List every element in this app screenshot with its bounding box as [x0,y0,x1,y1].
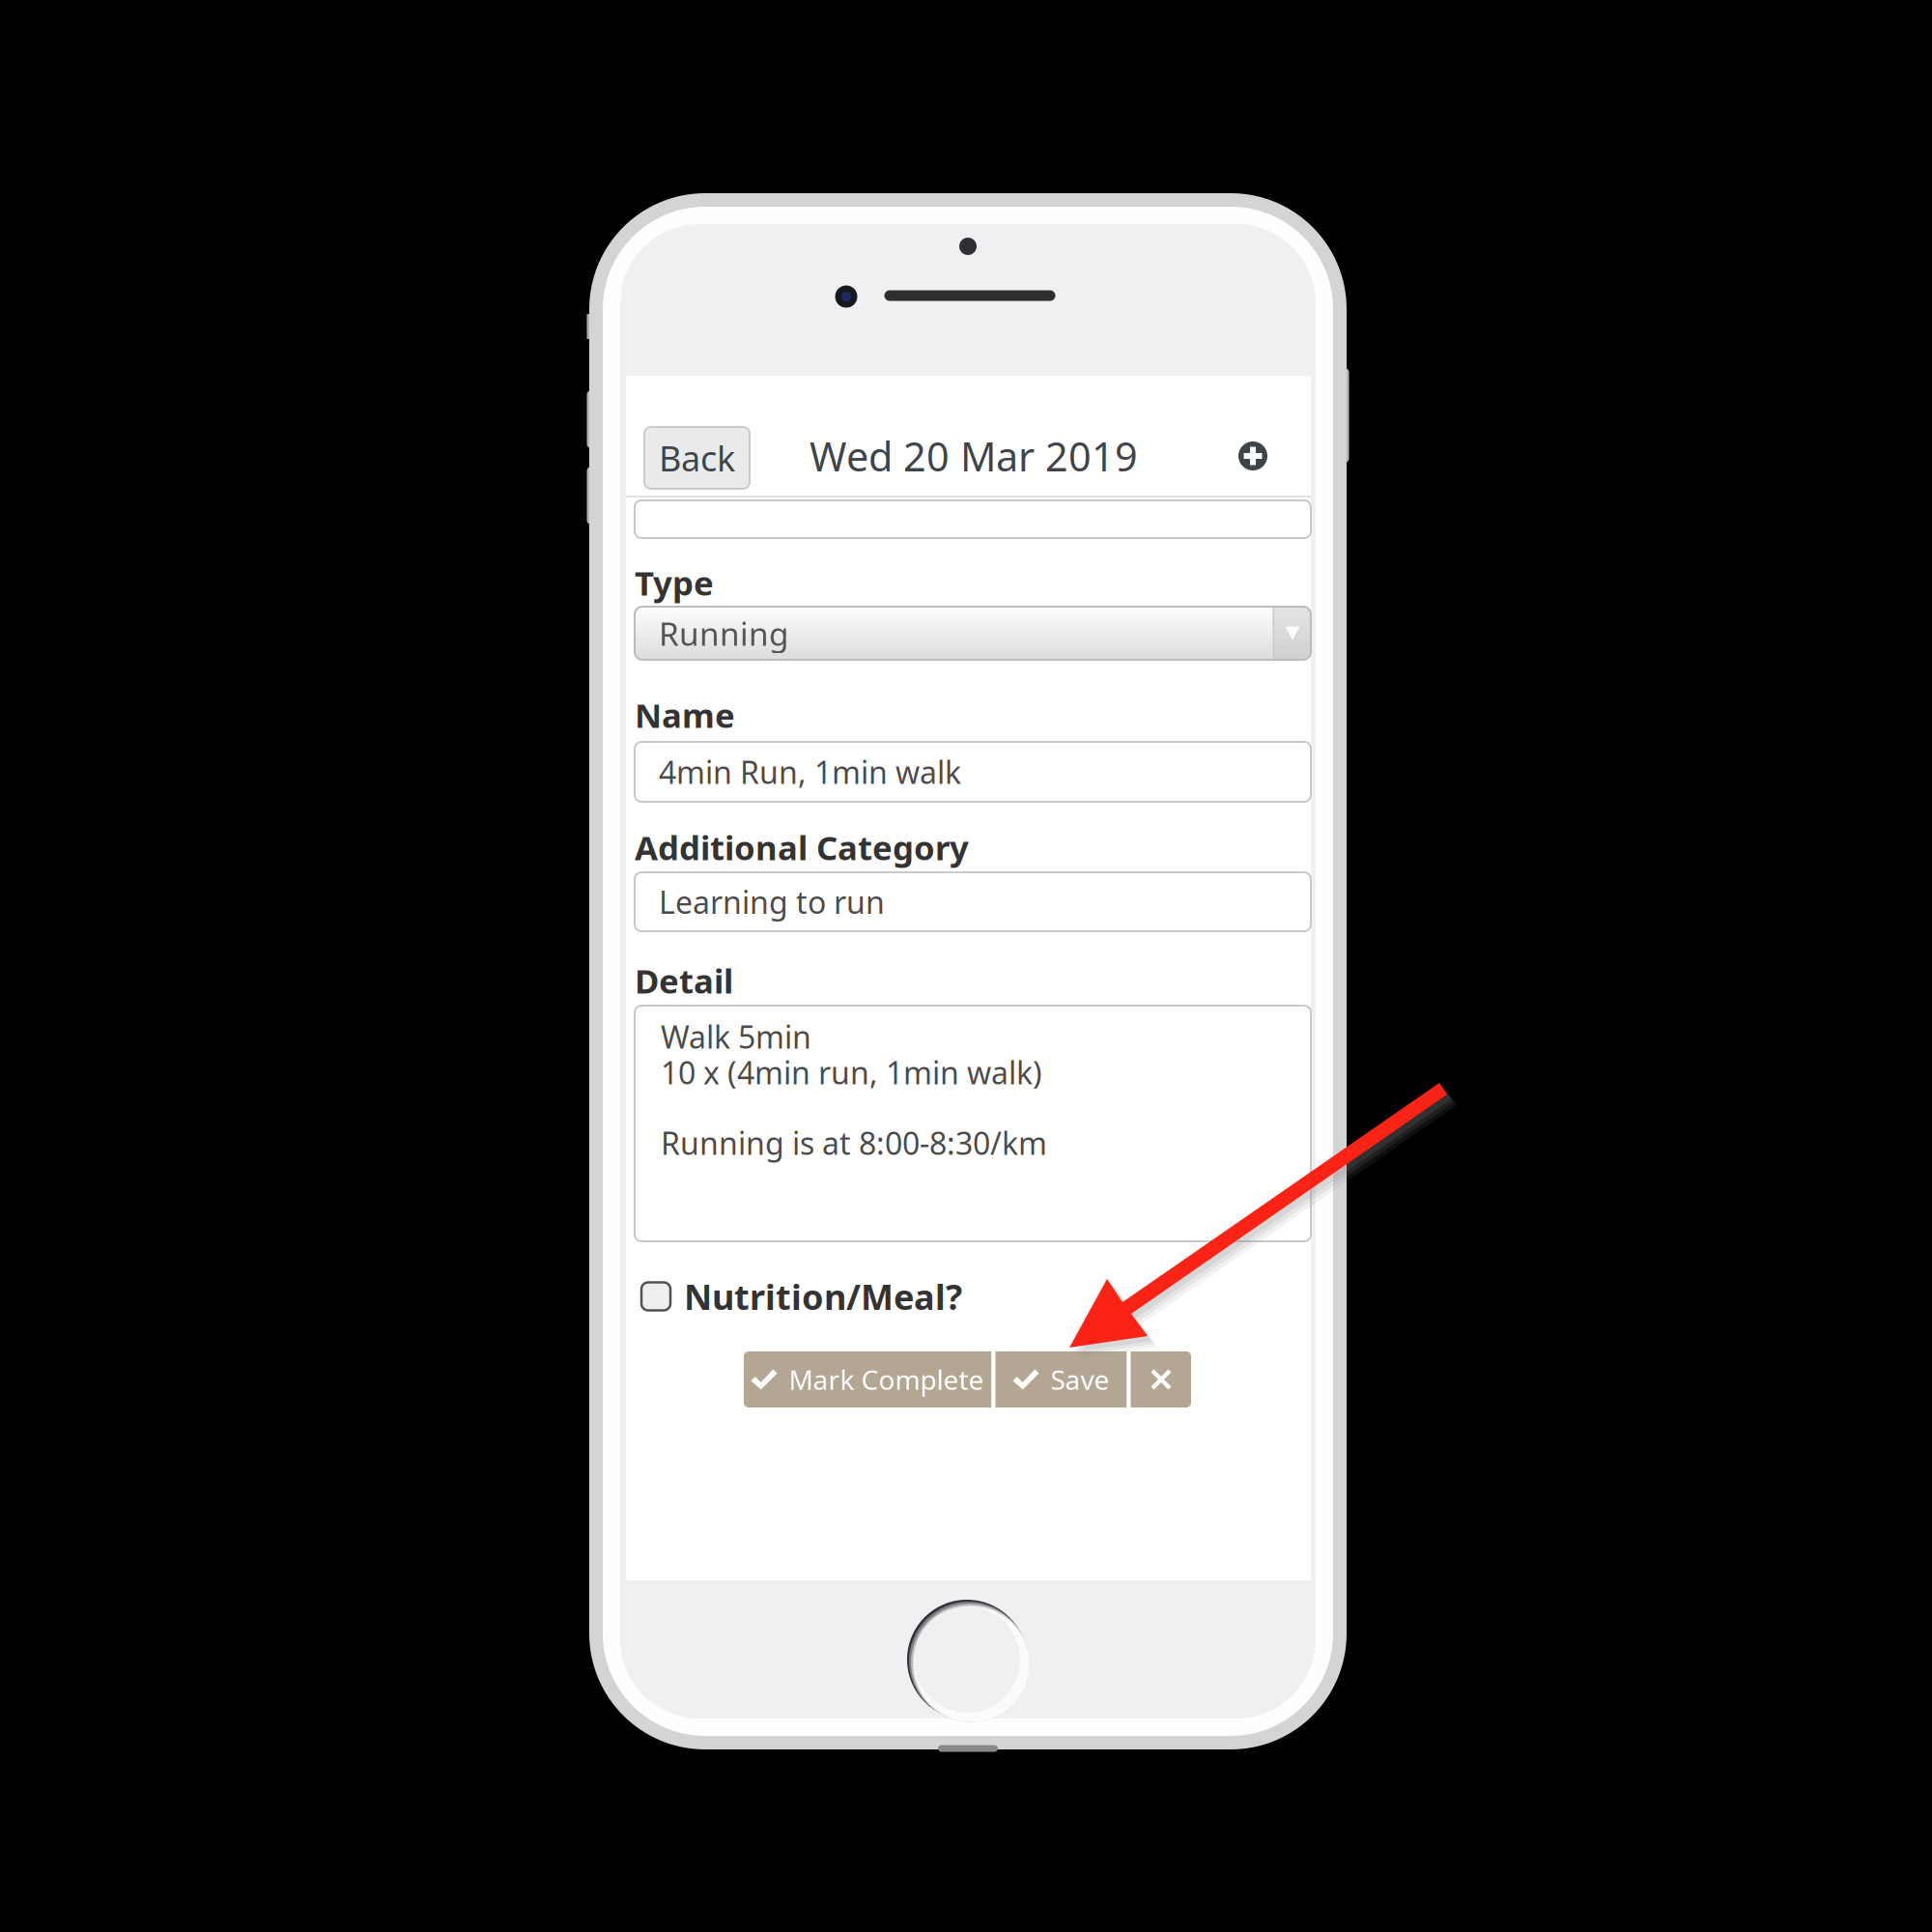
staticText: Running is at 8:00-8:30/km [661,1122,1047,1163]
staticText: Additional Category [635,825,969,869]
staticText: Save [1051,1361,1109,1397]
staticText: Nutrition/Meal? [684,1273,962,1319]
staticText: 4min Run, 1min walk [659,751,961,792]
button[interactable]: Save [995,1351,1127,1407]
staticText: Mark Complete [789,1361,984,1397]
staticText: Type [635,560,714,605]
button[interactable]: Nutrition/Meal? [641,1275,1047,1318]
staticText: Walk 5min [661,1016,811,1057]
staticText: Back [659,435,735,481]
button[interactable]: Add [1225,428,1281,484]
button[interactable]: Mark Complete [743,1351,992,1407]
button[interactable]: Cancel [1131,1351,1192,1407]
staticText: 10 x (4min run, 1min walk) [661,1052,1042,1093]
staticText: Name [635,693,735,737]
staticText: Running [659,612,789,655]
staticText: Detail [635,958,733,1003]
staticText: Learning to run [659,881,885,922]
staticText: Wed 20 Mar 2019 [810,429,1138,483]
button[interactable]: Back [644,427,750,489]
